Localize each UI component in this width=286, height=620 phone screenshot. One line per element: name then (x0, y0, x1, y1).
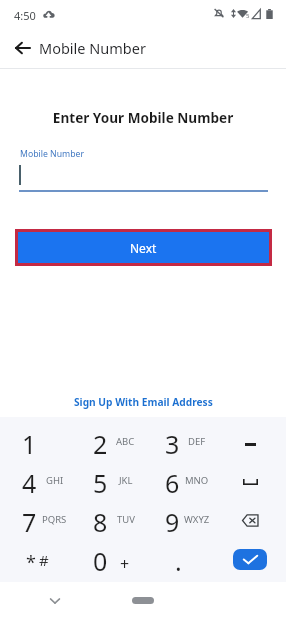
staticText: PQRS (42, 513, 67, 526)
staticText: 8 (93, 505, 108, 539)
button[interactable]: Home (132, 597, 154, 604)
staticText: 3 (165, 427, 180, 461)
staticText: 5 (93, 466, 108, 500)
button[interactable]: 5 (71, 462, 142, 501)
staticText: 4:50 (14, 8, 36, 23)
button[interactable]: 8 (71, 501, 142, 540)
button[interactable]: Back (2, 28, 42, 68)
button[interactable]: ok (214, 540, 286, 579)
button[interactable]: 0 (71, 540, 142, 579)
button[interactable]: minus (214, 423, 286, 462)
staticText: Mobile Number (20, 148, 85, 160)
staticText: Enter Your Mobile Number (0, 108, 286, 127)
button[interactable]: 6 (142, 462, 214, 501)
staticText: # (39, 550, 49, 570)
staticText: WXYZ (184, 513, 210, 526)
staticText: TUV (117, 513, 135, 526)
button[interactable]: space (214, 462, 286, 501)
staticText: 4 (22, 466, 37, 500)
button[interactable]: 9 (142, 501, 214, 540)
staticText: Sign Up With Email Address (74, 395, 213, 409)
button[interactable]: Next (18, 232, 269, 263)
staticText: 2 (93, 427, 108, 461)
staticText: Next (130, 240, 157, 256)
staticText: . (175, 544, 182, 578)
button[interactable]: 3 (142, 423, 214, 462)
staticText: MNO (185, 474, 209, 487)
button[interactable]: * (0, 540, 71, 579)
button[interactable]: 1 (0, 423, 71, 462)
button[interactable]: 4 (0, 462, 71, 501)
staticText: ABC (116, 435, 135, 448)
button[interactable]: del (214, 501, 286, 540)
staticText: 6 (165, 466, 180, 500)
staticText: 9 (165, 505, 180, 539)
staticText: 1 (22, 427, 37, 461)
staticText: JKL (119, 474, 133, 487)
button[interactable]: Sign Up With Email Address (0, 393, 286, 411)
staticText: * (26, 550, 36, 575)
staticText: DEF (188, 435, 206, 448)
button[interactable]: 2 (71, 423, 142, 462)
staticText: 7 (22, 505, 37, 539)
staticText: + (120, 553, 130, 575)
button[interactable]: Hide keyboard (43, 589, 67, 613)
button[interactable]: 7 (0, 501, 71, 540)
staticText: 0 (93, 544, 108, 578)
staticText: 5 (246, 12, 250, 20)
button[interactable]: . (142, 540, 214, 579)
staticText: Mobile Number (39, 38, 146, 58)
staticText: GHI (46, 474, 64, 487)
